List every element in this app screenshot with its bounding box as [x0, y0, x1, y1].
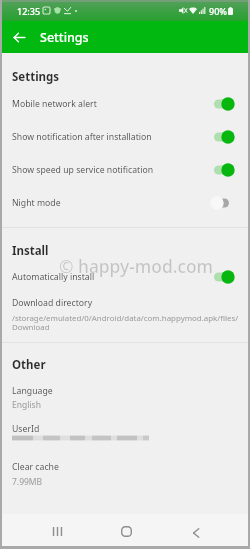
staticText: Download directory [12, 297, 93, 309]
button[interactable]: Recent apps [41, 515, 74, 548]
button[interactable]: Show speed up service notification [0, 157, 250, 183]
button[interactable]: Download directory [0, 294, 250, 337]
staticText: Show speed up service notification [12, 164, 210, 176]
staticText: UserId [12, 423, 40, 435]
staticText: Language [12, 385, 53, 397]
staticText: Settings [40, 29, 89, 46]
staticText: 12:35 [17, 5, 41, 17]
button[interactable]: Automatically install [0, 264, 250, 290]
button[interactable]: Back [7, 25, 31, 49]
staticText: English [12, 399, 41, 411]
button[interactable]: Show notification after installation [0, 124, 250, 150]
staticText: Install [12, 243, 49, 259]
button[interactable]: Mobile network alert [0, 91, 250, 117]
button[interactable]: Night mode [0, 190, 250, 216]
staticText: Mobile network alert [12, 98, 210, 110]
staticText: Show notification after installation [12, 131, 210, 143]
staticText: Other [12, 357, 46, 373]
button[interactable]: Back [179, 516, 212, 549]
staticText: Automatically install [12, 271, 210, 283]
staticText: /storage/emulated/0/Android/data/com.hap… [12, 313, 246, 332]
staticText: © happy-mod.com [59, 254, 214, 278]
button[interactable]: Language [0, 377, 250, 411]
staticText: 90% [209, 5, 227, 17]
staticText: 7.99MB [12, 476, 43, 488]
button[interactable]: Clear cache [0, 453, 250, 488]
staticText: Clear cache [12, 461, 59, 473]
staticText: Settings [12, 69, 60, 85]
button[interactable]: Home [110, 515, 143, 548]
button[interactable]: UserId [0, 415, 250, 448]
staticText: Night mode [12, 197, 210, 209]
